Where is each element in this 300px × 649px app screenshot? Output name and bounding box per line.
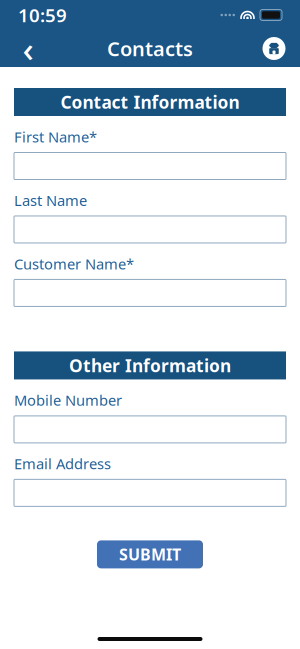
staticText: Contact Information [60, 90, 239, 113]
staticText: Mobile Number [14, 390, 122, 410]
staticText: SUBMIT [119, 544, 181, 565]
button[interactable]: SUBMIT [97, 540, 203, 568]
staticText: Customer Name* [14, 254, 134, 273]
staticText: First Name* [14, 127, 97, 146]
staticText: ‹ [22, 25, 33, 71]
staticText: Other Information [69, 354, 231, 377]
button[interactable]: Home [254, 30, 294, 66]
button[interactable]: Back [6, 30, 50, 66]
staticText: Contacts [107, 35, 193, 62]
staticText: 10:59 [18, 3, 67, 27]
staticText: Last Name [14, 190, 87, 210]
staticText: Email Address [14, 454, 111, 473]
